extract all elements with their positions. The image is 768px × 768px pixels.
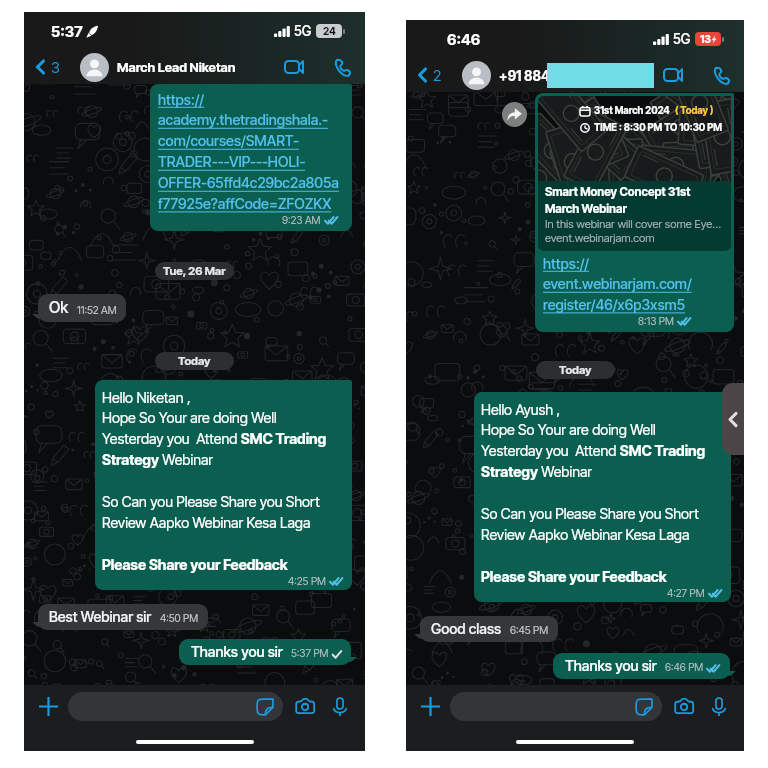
staticText: Ok: [49, 298, 69, 317]
staticText: Today: [559, 363, 592, 377]
button[interactable]: Stickers: [256, 698, 274, 716]
button[interactable]: Hello Ayush , Hope So Your are doing Wel…: [474, 392, 731, 602]
button[interactable]: Thanks you sir: [553, 653, 730, 679]
button[interactable]: Today: [155, 352, 234, 370]
staticText: 2: [433, 66, 442, 84]
button[interactable]: Attach: [34, 692, 62, 720]
staticText: 5G: [294, 23, 312, 39]
button[interactable]: 3: [31, 55, 64, 79]
button[interactable]: Voice message: [706, 693, 732, 719]
staticText: Hello Niketan , Hope So Your are doing W…: [102, 389, 344, 574]
button[interactable]: Voice message: [327, 693, 353, 719]
button[interactable]: Camera: [292, 693, 318, 719]
staticText: 3: [51, 58, 60, 76]
staticText: event.webinarjam.com: [545, 231, 655, 245]
button[interactable]: Voice call: [329, 54, 355, 80]
button[interactable]: Voice call: [708, 62, 734, 88]
staticText: 8:13 PM: [638, 315, 674, 328]
staticText: Best Webinar sir: [49, 608, 152, 625]
button[interactable]: Expand panel: [722, 383, 744, 455]
staticText: ( Today ): [675, 105, 714, 117]
button[interactable]: Hello Niketan , Hope So Your are doing W…: [95, 380, 352, 590]
staticText: 31st March 2024: [594, 105, 670, 117]
staticText: 24: [323, 25, 336, 38]
staticText: March Lead Niketan: [117, 59, 236, 75]
staticText: 4:27 PM: [667, 587, 705, 600]
staticText: +91 884: [499, 68, 550, 84]
staticText: https:// event.webinarjam.com/ register/…: [543, 255, 692, 314]
staticText: 9:23 AM: [282, 214, 321, 227]
button[interactable]: 31st March 2024: [535, 93, 734, 332]
staticText: 6:45 PM: [510, 624, 549, 637]
button[interactable]: Camera: [671, 693, 697, 719]
staticText: Thanks you sir: [565, 657, 657, 674]
staticText: Hello Ayush , Hope So Your are doing Wel…: [481, 401, 723, 586]
button[interactable]: Video call: [658, 60, 688, 90]
button[interactable]: Forward: [502, 102, 527, 127]
staticText: Good class: [431, 620, 502, 637]
staticText: 4:25 PM: [288, 575, 326, 588]
staticText: Today: [178, 354, 211, 368]
staticText: TIME : 8:30 PM TO 10:30 PM: [594, 122, 722, 134]
staticText: 13: [700, 33, 711, 46]
button[interactable]: Stickers: [68, 692, 283, 721]
staticText: 4:50 PM: [160, 612, 199, 625]
staticText: Thanks you sir: [191, 643, 283, 660]
button[interactable]: Stickers: [635, 698, 653, 716]
staticText: 6:46 PM: [665, 661, 704, 674]
button[interactable]: Tue, 26 Mar: [155, 262, 234, 280]
staticText: 6:46: [447, 30, 481, 48]
button[interactable]: Attach: [416, 692, 444, 720]
staticText: 5:37: [51, 22, 83, 40]
button[interactable]: Good class: [420, 616, 558, 642]
button[interactable]: 2: [413, 63, 446, 87]
staticText: 11:52 AM: [77, 304, 117, 317]
button[interactable]: https:// academy.thetradingshala.- com/c…: [150, 84, 352, 231]
staticText: Smart Money Concept 31st March Webinar: [545, 185, 691, 216]
staticText: 5:37 PM: [291, 647, 329, 660]
staticText: In this webinar will cover some Eye…: [545, 217, 721, 231]
button[interactable]: Stickers: [450, 692, 662, 721]
button[interactable]: Ok: [38, 294, 126, 322]
staticText: 5G: [673, 31, 691, 47]
staticText: Tue, 26 Mar: [163, 264, 226, 278]
staticText: https:// academy.thetradingshala.- com/c…: [158, 91, 339, 213]
button[interactable]: Thanks you sir: [179, 639, 351, 665]
button[interactable]: Best Webinar sir: [38, 604, 208, 630]
button[interactable]: Today: [536, 361, 615, 379]
button[interactable]: Video call: [279, 52, 309, 82]
